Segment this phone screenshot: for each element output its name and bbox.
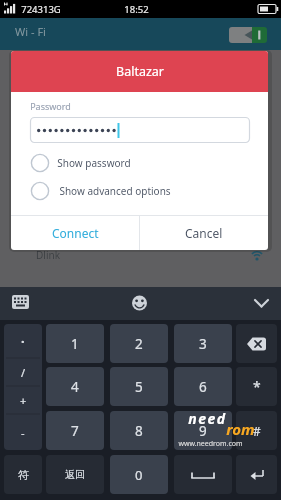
staticText: Baltazar <box>116 63 164 80</box>
staticText: need <box>188 409 227 427</box>
button[interactable] <box>236 455 277 494</box>
button[interactable]: 9 <box>174 411 232 450</box>
staticText: Show password <box>57 156 131 170</box>
staticText: Cancel <box>185 225 223 241</box>
staticText: · <box>21 332 25 350</box>
button[interactable]: 7 <box>46 411 104 450</box>
staticText: 8 <box>135 422 143 440</box>
staticText: Show advanced options <box>59 184 171 198</box>
staticText: 4 <box>71 378 79 396</box>
staticText: 6 <box>199 378 207 396</box>
staticText: / <box>21 365 26 380</box>
staticText: 2 <box>135 335 143 353</box>
staticText: Password <box>30 100 71 112</box>
staticText: - <box>21 425 25 440</box>
button[interactable]: 2 <box>110 324 168 363</box>
button[interactable]: # <box>236 411 277 450</box>
staticText: Wi - Fi <box>15 24 46 39</box>
staticText: 18:52 <box>124 3 149 16</box>
button[interactable]: 返回 <box>46 455 104 494</box>
staticText: Dlink <box>36 248 60 262</box>
staticText: 7 <box>71 422 79 440</box>
button[interactable] <box>229 27 267 43</box>
staticText: 5 <box>135 378 143 396</box>
staticText: 0 <box>135 466 143 484</box>
staticText: * <box>253 377 261 396</box>
button[interactable]: 0 <box>110 455 168 494</box>
staticText: 724313G <box>21 3 61 16</box>
button[interactable] <box>26 152 146 174</box>
button[interactable] <box>174 455 232 494</box>
button[interactable]: 8 <box>110 411 168 450</box>
staticText: 1 <box>71 335 79 353</box>
staticText: rom <box>226 419 255 439</box>
staticText: 3 <box>199 335 207 353</box>
button[interactable]: * <box>236 367 277 406</box>
button[interactable]: 4 <box>46 367 104 406</box>
button[interactable] <box>4 324 42 450</box>
button[interactable] <box>236 324 277 363</box>
button[interactable] <box>26 180 176 202</box>
staticText: www.needrom.com <box>178 439 243 448</box>
button[interactable]: 3 <box>174 324 232 363</box>
staticText: 9 <box>199 422 207 440</box>
button[interactable]: 5 <box>110 367 168 406</box>
button[interactable]: Cancel <box>140 216 268 250</box>
staticText: Connect <box>52 225 99 241</box>
staticText: 返回 <box>65 468 85 481</box>
staticText: 符 <box>18 468 29 482</box>
button[interactable]: 1 <box>46 324 104 363</box>
button[interactable]: 符 <box>4 455 42 494</box>
button[interactable]: 6 <box>174 367 232 406</box>
staticText: + <box>20 393 27 408</box>
button[interactable] <box>0 287 281 320</box>
button[interactable]: Connect <box>11 216 139 250</box>
staticText: # <box>253 423 261 439</box>
